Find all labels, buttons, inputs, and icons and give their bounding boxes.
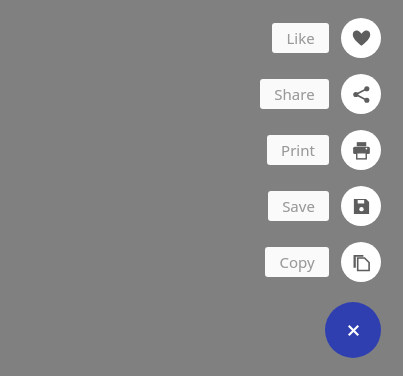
button[interactable]: Like [341,18,381,58]
button[interactable]: Share [341,74,381,114]
button[interactable]: Print [267,135,329,165]
button[interactable]: Copy [265,247,329,277]
button[interactable]: Save [268,191,329,221]
staticText: Like [286,28,315,48]
button[interactable]: Share [260,79,329,109]
staticText: Print [281,140,315,160]
button[interactable]: Copy [341,242,381,282]
staticText: Copy [279,252,315,272]
button[interactable]: Save [341,186,381,226]
button[interactable]: Print [341,130,381,170]
staticText: Save [282,196,315,216]
button[interactable]: Like [272,23,329,53]
staticText: Share [274,84,315,104]
button[interactable]: Close menu [325,302,381,358]
